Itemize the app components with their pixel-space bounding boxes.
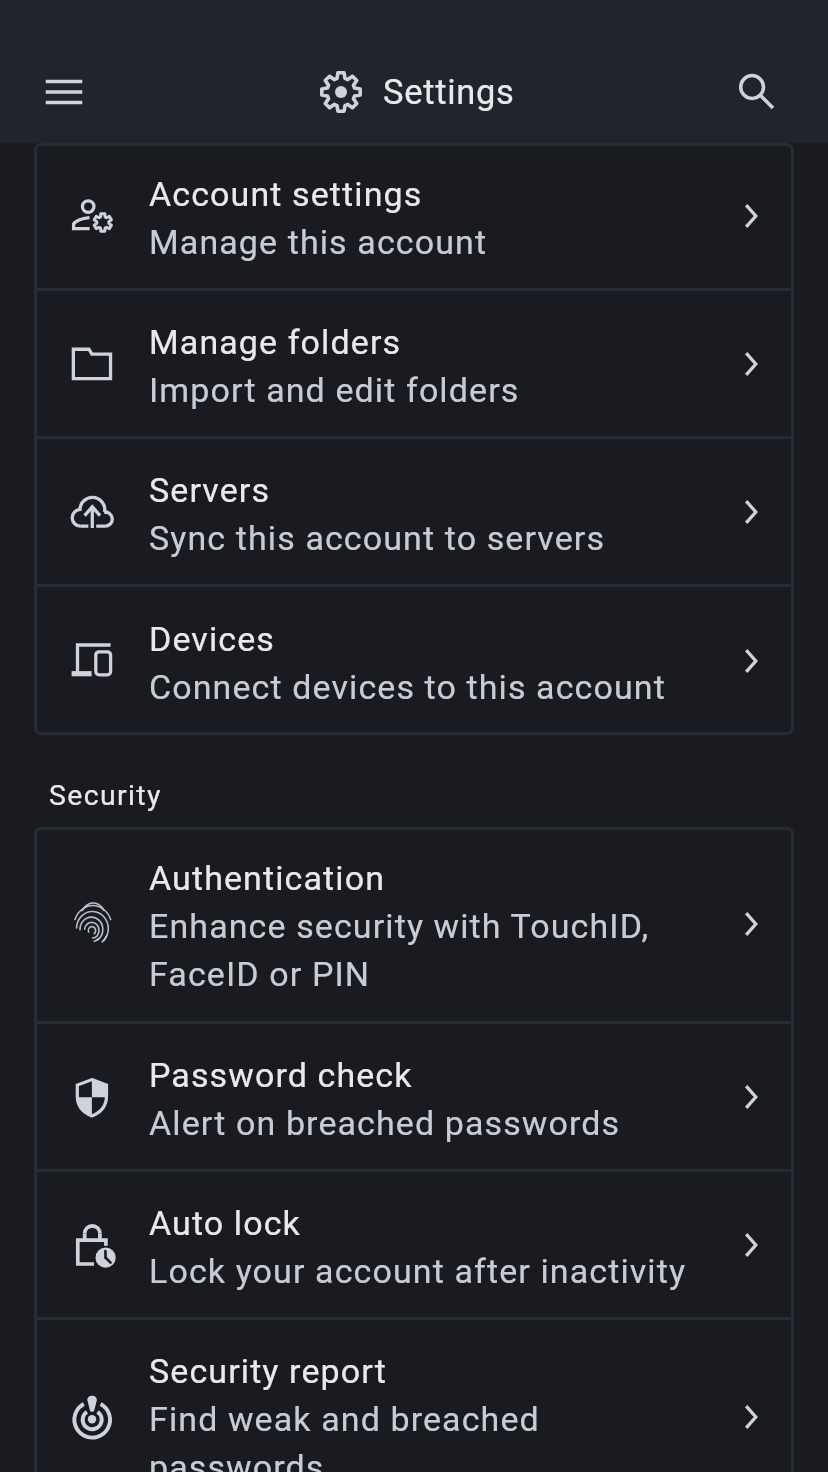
staticText: Security <box>49 779 162 812</box>
button[interactable]: Security report <box>34 1320 794 1472</box>
staticText: Alert on breached passwords <box>149 1097 621 1145</box>
staticText: Find weak and breached passwords <box>149 1393 699 1472</box>
button[interactable]: Search <box>713 48 801 136</box>
staticText: Manage this account <box>149 216 488 264</box>
staticText: Security report <box>149 1345 387 1393</box>
button[interactable]: Auto lock <box>34 1172 794 1317</box>
staticText: Lock your account after inactivity <box>149 1245 687 1293</box>
button[interactable]: Servers <box>34 439 794 584</box>
button[interactable]: Account settings <box>34 143 794 288</box>
staticText: Auto lock <box>149 1197 301 1245</box>
staticText: Account settings <box>149 168 423 216</box>
button[interactable]: Manage folders <box>34 291 794 436</box>
button[interactable]: Password check <box>34 1024 794 1169</box>
staticText: Password check <box>149 1049 413 1097</box>
staticText: Authentication <box>149 852 386 900</box>
staticText: Devices <box>149 613 275 661</box>
staticText: Sync this account to servers <box>149 512 606 560</box>
staticText: Servers <box>149 464 271 512</box>
staticText: Import and edit folders <box>149 364 520 412</box>
staticText: Settings <box>383 72 515 112</box>
button[interactable]: Open navigation menu <box>20 48 108 136</box>
staticText: Manage folders <box>149 316 402 364</box>
button[interactable]: Authentication <box>34 827 794 1021</box>
button[interactable]: Devices <box>34 587 794 735</box>
staticText: Enhance security with TouchID, FaceID or… <box>149 900 699 996</box>
staticText: Connect devices to this account <box>149 661 666 709</box>
